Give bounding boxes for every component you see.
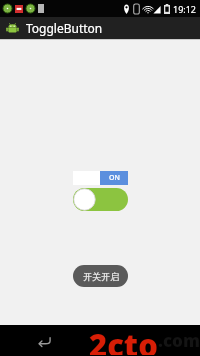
staticText: 19:12 [173, 3, 197, 15]
staticText: 2cto [89, 324, 158, 355]
button[interactable]: Back [36, 333, 52, 349]
staticText: .com [158, 329, 200, 352]
staticText: ON [109, 173, 120, 183]
staticText: ToggleButton [26, 20, 103, 36]
button[interactable]: Toggle switch [73, 188, 128, 211]
button[interactable]: ON [73, 171, 128, 185]
button[interactable]: 开关开启 [73, 265, 128, 287]
staticText: 开关开启 [83, 271, 119, 282]
